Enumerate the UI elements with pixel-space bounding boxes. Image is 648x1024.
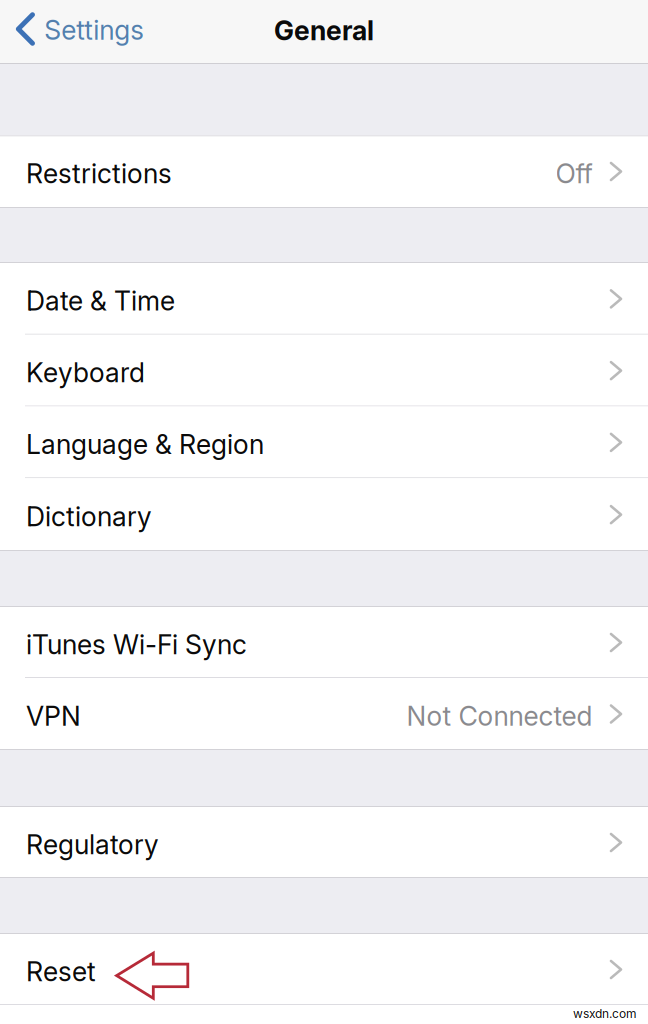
button[interactable]: Language & Region — [0, 406, 648, 477]
staticText: iTunes Wi-Fi Sync — [26, 628, 247, 661]
button[interactable]: Date & Time — [0, 263, 648, 334]
staticText: Restrictions — [26, 157, 172, 190]
staticText: VPN — [26, 700, 81, 732]
staticText: Dictionary — [26, 500, 152, 533]
staticText: Settings — [44, 14, 144, 46]
button[interactable]: Regulatory — [0, 807, 648, 877]
button[interactable]: Dictionary — [0, 478, 648, 550]
button[interactable]: Settings — [0, 0, 156, 64]
staticText: Reset — [26, 955, 96, 988]
button[interactable]: Restrictions — [0, 136, 648, 207]
staticText: Language & Region — [26, 428, 264, 460]
staticText: Date & Time — [26, 285, 175, 317]
staticText: Keyboard — [26, 356, 145, 389]
staticText: Off — [555, 157, 592, 190]
button[interactable]: VPN — [0, 678, 648, 749]
staticText: Not Connected — [406, 700, 592, 732]
staticText: General — [274, 14, 374, 47]
button[interactable]: Keyboard — [0, 335, 648, 406]
staticText: Regulatory — [26, 828, 159, 861]
staticText: wsxdn.com — [573, 1006, 637, 1021]
button[interactable]: iTunes Wi-Fi Sync — [0, 607, 648, 677]
button[interactable]: Reset — [0, 934, 648, 1004]
